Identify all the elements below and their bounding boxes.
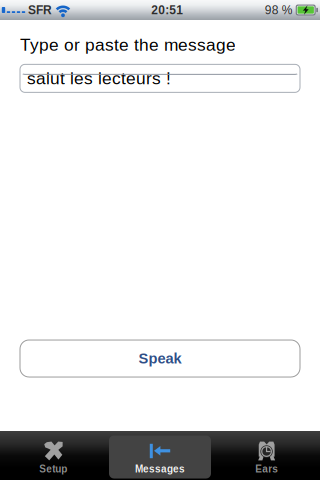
button[interactable]: Setup — [0, 431, 107, 480]
button[interactable]: Ears — [213, 431, 320, 480]
staticText: 98 % — [265, 3, 293, 17]
staticText: Type or paste the message — [20, 35, 236, 54]
staticText: Messages — [135, 463, 185, 475]
staticText: SFR — [28, 3, 52, 17]
staticText: salut les lecteurs ! — [27, 69, 171, 88]
button[interactable]: Messages — [107, 431, 213, 480]
staticText: Speak — [138, 350, 181, 367]
staticText: 20:51 — [151, 3, 183, 17]
button[interactable]: Speak — [0, 340, 320, 377]
staticText: Setup — [39, 463, 67, 475]
staticText: Ears — [255, 463, 278, 475]
